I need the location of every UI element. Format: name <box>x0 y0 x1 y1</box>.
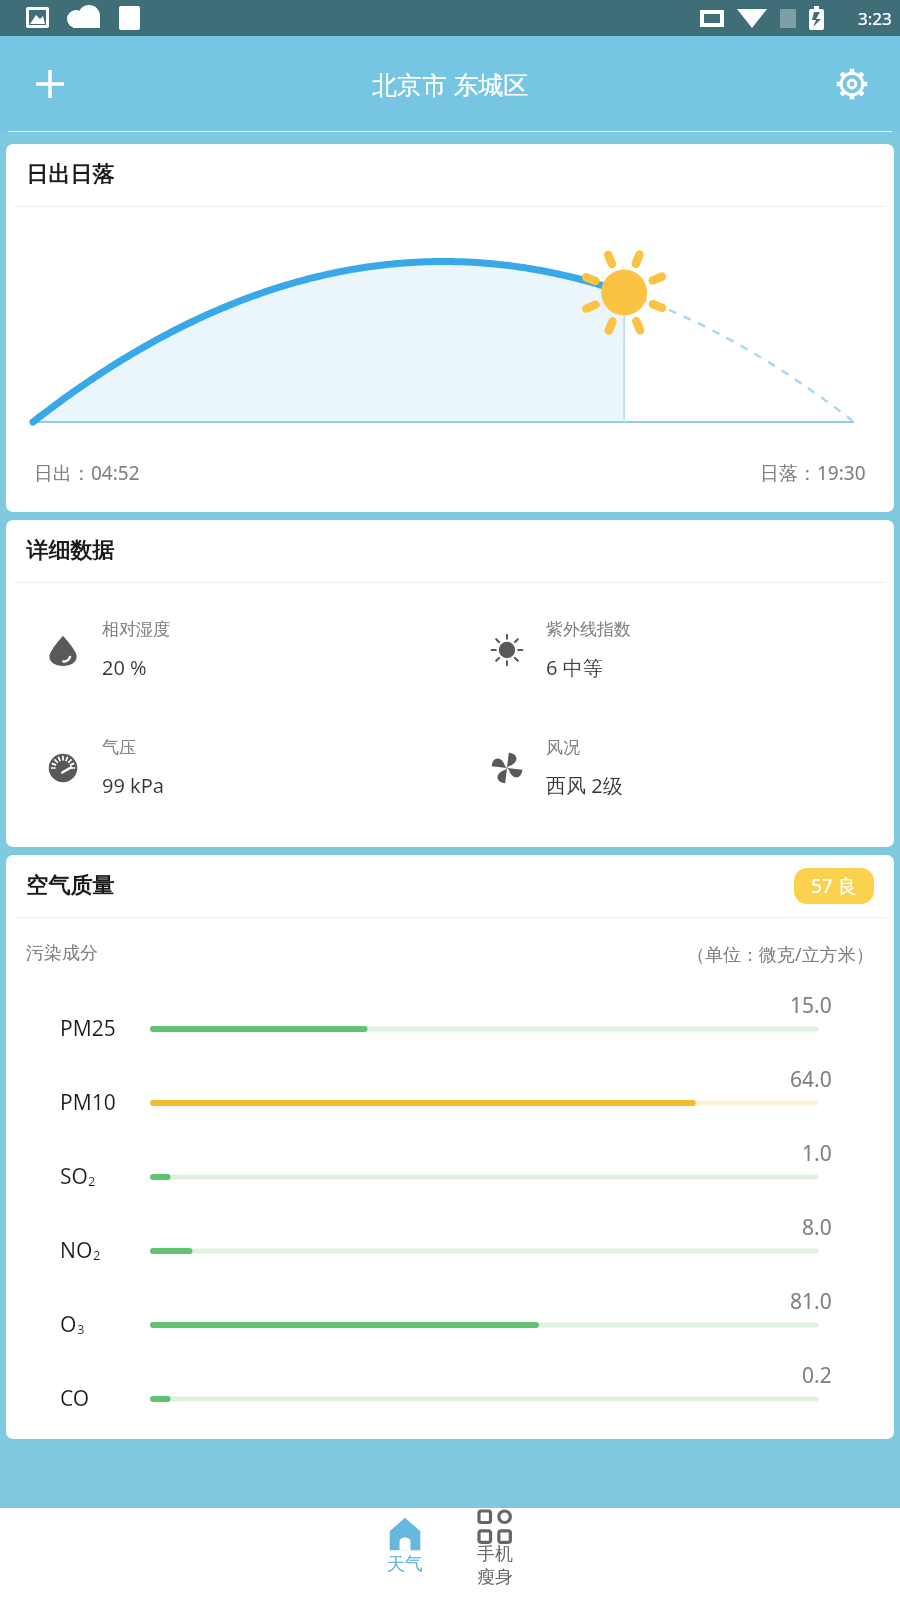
staticText: 57 良 <box>811 873 857 899</box>
staticText: NO <box>60 1236 93 1265</box>
button[interactable]: 手机 <box>450 1508 540 1600</box>
staticText: （单位：微克/立方米） <box>687 942 874 967</box>
staticText: 手机 <box>477 1543 513 1566</box>
staticText: O <box>60 1310 77 1339</box>
staticText: 气压 <box>102 737 136 758</box>
button[interactable]: SO <box>6 1133 894 1207</box>
staticText: 1.0 <box>802 1139 832 1168</box>
staticText: 日落：19:30 <box>760 460 866 486</box>
button[interactable]: 风况 <box>450 709 894 827</box>
button[interactable]: O <box>6 1281 894 1355</box>
button[interactable]: Settings <box>826 58 878 110</box>
button[interactable]: 日出日落 <box>6 144 894 512</box>
staticText: 污染成分 <box>26 942 98 965</box>
staticText: 99 kPa <box>102 772 165 799</box>
button[interactable]: 空气质量 <box>6 855 894 1439</box>
button[interactable]: CO <box>6 1355 894 1429</box>
staticText: 风况 <box>546 737 580 758</box>
staticText: PM10 <box>60 1088 116 1117</box>
staticText: 2 <box>88 1172 96 1190</box>
staticText: 2 <box>93 1246 101 1264</box>
staticText: 3:23 <box>858 7 892 30</box>
staticText: 6 中等 <box>546 654 603 681</box>
button[interactable]: Add city <box>20 54 80 114</box>
staticText: 81.0 <box>790 1287 832 1316</box>
staticText: 3 <box>77 1320 85 1338</box>
staticText: 日出：04:52 <box>34 460 140 486</box>
staticText: 日出日落 <box>26 161 114 189</box>
staticText: 20 % <box>102 654 147 681</box>
staticText: 天气 <box>387 1553 423 1576</box>
button[interactable]: 紫外线指数 <box>450 591 894 709</box>
staticText: 8.0 <box>802 1213 832 1242</box>
staticText: 详细数据 <box>26 537 114 565</box>
button[interactable]: 天气 <box>360 1508 450 1600</box>
button[interactable]: 气压 <box>6 709 450 827</box>
button[interactable]: 57 良 <box>794 868 874 904</box>
staticText: 紫外线指数 <box>546 619 631 640</box>
staticText: 西风 2级 <box>546 772 623 799</box>
staticText: 64.0 <box>790 1065 832 1094</box>
button[interactable]: 详细数据 <box>6 520 894 847</box>
staticText: 0.2 <box>802 1361 832 1390</box>
button[interactable]: NO <box>6 1207 894 1281</box>
staticText: 空气质量 <box>26 872 114 900</box>
staticText: 15.0 <box>790 991 832 1020</box>
staticText: PM25 <box>60 1014 116 1043</box>
button[interactable]: PM25 <box>6 985 894 1059</box>
staticText: 瘦身 <box>477 1566 513 1589</box>
staticText: 北京市 东城区 <box>372 67 529 101</box>
staticText: SO <box>60 1162 88 1191</box>
staticText: CO <box>60 1384 90 1413</box>
button[interactable]: PM10 <box>6 1059 894 1133</box>
staticText: 相对湿度 <box>102 619 170 640</box>
button[interactable]: 相对湿度 <box>6 591 450 709</box>
